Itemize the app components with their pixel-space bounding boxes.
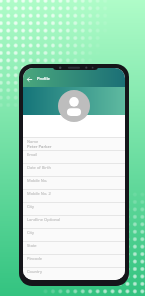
staticText: Profile bbox=[37, 76, 50, 82]
staticText: Date of Birth bbox=[27, 165, 51, 170]
staticText: State bbox=[27, 243, 37, 248]
staticText: Pincode bbox=[27, 256, 42, 261]
staticText: Country bbox=[27, 269, 43, 274]
staticText: Name bbox=[27, 139, 39, 144]
staticText: Email bbox=[27, 152, 38, 157]
staticText: City bbox=[27, 204, 35, 209]
button[interactable]: Pincode bbox=[23, 254, 125, 267]
button[interactable]: Name bbox=[23, 137, 125, 150]
button[interactable]: Landline Optional bbox=[23, 215, 125, 228]
button[interactable]: State bbox=[23, 241, 125, 254]
button[interactable]: City bbox=[23, 202, 125, 215]
staticText: Mobile No. bbox=[27, 178, 48, 183]
staticText: City bbox=[27, 230, 35, 235]
button[interactable]: Email bbox=[23, 150, 125, 163]
button[interactable]: Profile photo bbox=[58, 90, 90, 122]
button[interactable]: Mobile No. bbox=[23, 176, 125, 189]
staticText: Landline Optional bbox=[27, 217, 61, 222]
button[interactable]: City bbox=[23, 228, 125, 241]
button[interactable]: Date of Birth bbox=[23, 163, 125, 176]
staticText: Peter Parker bbox=[27, 144, 52, 150]
button[interactable]: Country bbox=[23, 267, 125, 280]
button[interactable]: Mobile No. 2 bbox=[23, 189, 125, 202]
button[interactable]: Back bbox=[26, 76, 33, 83]
staticText: Mobile No. 2 bbox=[27, 191, 51, 196]
